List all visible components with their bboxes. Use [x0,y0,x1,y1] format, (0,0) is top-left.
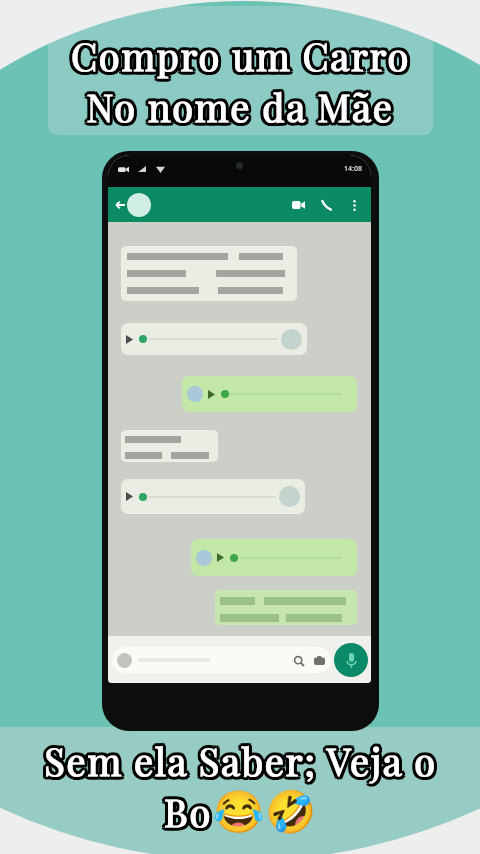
staticText: Bo [166,789,214,840]
button[interactable]: Camera [313,654,326,667]
staticText: Compro um Carro [69,28,408,79]
staticText: No nome da Mãe [86,81,394,132]
staticText: Sem ela Saber; Veja o [43,732,436,783]
staticText: No nome da Mãe [88,83,396,134]
staticText: Compro um Carro [73,33,412,84]
staticText: Sem ela Saber; Veja o [44,732,437,783]
button[interactable]: Contact photo [127,193,151,217]
staticText: Compro um Carro [71,33,410,84]
staticText: Sem ela Saber; Veja o [43,738,436,789]
staticText: Bo [166,788,214,839]
staticText: Sem ela Saber; Veja o [46,737,439,788]
staticText: Sem ela Saber; Veja o [42,733,435,784]
staticText: Compro um Carro [74,32,413,83]
staticText: Sem ela Saber; Veja o [41,735,434,786]
staticText: No nome da Mãe [88,79,396,130]
staticText: No nome da Mãe [85,78,393,129]
staticText: Bo [161,788,209,839]
staticText: Bo [163,783,211,834]
staticText: Bo [161,785,209,836]
staticText: Sem ela Saber; Veja o [46,738,439,789]
button[interactable]: Video call [289,196,307,214]
staticText: Bo [162,784,210,835]
staticText: Bo [164,783,212,834]
staticText: No nome da Mãe [86,84,394,135]
staticText: Bo [167,786,215,837]
staticText: Compro um Carro [71,27,410,78]
staticText: No nome da Mãe [83,81,391,132]
staticText: No nome da Mãe [84,79,392,130]
button[interactable] [215,590,357,625]
staticText: Bo [164,786,212,837]
button[interactable] [191,539,357,576]
staticText: 🤣 [265,788,317,836]
staticText: Bo [161,786,209,837]
staticText: Compro um Carro [68,29,407,80]
staticText: No nome da Mãe [83,83,391,134]
staticText: Compro um Carro [68,32,407,83]
button[interactable]: Voice call [318,196,336,214]
staticText: Sem ela Saber; Veja o [47,734,440,785]
staticText: Sem ela Saber; Veja o [44,738,437,789]
staticText: Compro um Carro [68,30,407,81]
button[interactable] [121,430,218,462]
staticText: No nome da Mãe [89,81,397,132]
staticText: Compro um Carro [73,27,412,78]
staticText: No nome da Mãe [85,84,393,135]
staticText: Sem ela Saber; Veja o [41,734,434,785]
staticText: Compro um Carro [73,28,412,79]
button[interactable]: Back [113,198,126,211]
staticText: No nome da Mãe [88,78,396,129]
staticText: No nome da Mãe [83,80,391,131]
staticText: Sem ela Saber; Veja o [41,737,434,788]
staticText: No nome da Mãe [86,78,394,129]
staticText: Compro um Carro [74,29,413,80]
button[interactable]: More options [347,198,361,212]
staticText: Compro um Carro [74,30,413,81]
staticText: Bo [166,784,214,835]
button[interactable]: Record voice message [334,643,368,677]
staticText: Sem ela Saber; Veja o [47,735,440,786]
button[interactable]: Attach [112,647,331,673]
staticText: Bo [163,789,211,840]
staticText: No nome da Mãe [88,84,396,135]
staticText: Compro um Carro [70,33,409,84]
staticText: Sem ela Saber; Veja o [42,737,435,788]
staticText: Sem ela Saber; Veja o [44,735,437,786]
button[interactable] [121,323,307,355]
staticText: Compro um Carro [69,32,408,83]
staticText: 14:08 [344,164,362,174]
staticText: 😂 [213,788,265,836]
staticText: Sem ela Saber; Veja o [46,733,439,784]
staticText: Bo [162,788,210,839]
staticText: Sem ela Saber; Veja o [46,732,439,783]
staticText: No nome da Mãe [89,83,397,134]
staticText: Bo [166,783,214,834]
staticText: Compro um Carro [71,30,410,81]
staticText: Compro um Carro [70,27,409,78]
staticText: Compro um Carro [73,32,412,83]
button[interactable] [182,376,357,412]
staticText: No nome da Mãe [84,83,392,134]
button[interactable] [121,479,305,514]
staticText: Bo [164,789,212,840]
staticText: Bo [167,788,215,839]
staticText: No nome da Mãe [89,80,397,131]
staticText: Bo [167,785,215,836]
staticText: Sem ela Saber; Veja o [47,737,440,788]
button[interactable]: Attach [292,654,305,667]
button[interactable] [121,246,297,301]
